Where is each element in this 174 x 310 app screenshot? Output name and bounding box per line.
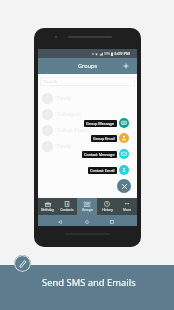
button[interactable]: Birthday [38,198,57,215]
staticText: History [102,208,113,212]
button[interactable]: Group Message [38,118,129,128]
staticText: F [46,95,49,102]
button[interactable]: Search [40,77,135,86]
button[interactable]: Recent apps [107,217,116,226]
staticText: Groups [78,62,98,70]
staticText: College friends [57,127,90,133]
button[interactable]: Back [55,217,64,226]
staticText: 99% [104,52,110,56]
staticText: F [46,143,49,150]
staticText: Colleagues [57,111,81,117]
button[interactable]: C [38,122,137,138]
staticText: Contact Email [90,168,115,173]
button[interactable]: Compose message [14,255,31,272]
button[interactable]: Contacts [57,198,77,215]
button[interactable]: History [97,198,117,215]
staticText: Group Email [93,136,115,141]
staticText: 3:09 PM [114,51,130,57]
staticText: Send SMS and Emails [42,276,136,289]
button[interactable]: Close menu [117,179,131,193]
staticText: Contacts [60,208,74,212]
button[interactable]: Contact Message [38,149,129,159]
staticText: Contact Message [84,152,115,157]
button[interactable]: F [38,138,137,154]
button[interactable]: Groups [77,198,97,215]
staticText: C [46,111,50,118]
staticText: Search [44,79,58,85]
button[interactable]: Group Email [38,133,129,143]
staticText: More [123,208,131,212]
staticText: Family [57,143,71,149]
button[interactable]: Contact Email [38,165,129,175]
staticText: C [46,127,50,134]
button[interactable]: More [117,198,137,215]
staticText: Group Message [86,121,115,126]
button[interactable]: F [38,90,137,106]
button[interactable]: Add group [121,61,131,71]
button[interactable]: C [38,106,137,122]
staticText: Birthday [41,208,54,212]
staticText: Family [57,95,71,101]
staticText: Groups [82,208,93,212]
button[interactable]: Home [82,217,91,226]
